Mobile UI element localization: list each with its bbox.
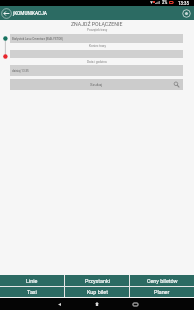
staticText: 2% bbox=[162, 0, 168, 6]
button[interactable]: Kup bilet bbox=[65, 287, 129, 297]
button[interactable]: dzisiaj 13:35 bbox=[10, 65, 183, 76]
staticText: Kup bilet bbox=[87, 289, 108, 295]
button[interactable]: Home bbox=[90, 298, 104, 310]
button[interactable]: Back bbox=[52, 298, 66, 310]
button[interactable]: My location bbox=[180, 7, 193, 20]
button[interactable]: Recent apps bbox=[128, 298, 142, 310]
staticText: jKOMUNIKACJA bbox=[13, 10, 47, 16]
other: Search bbox=[173, 81, 180, 88]
staticText: Przystanki bbox=[85, 278, 110, 284]
staticText: Początek trasy bbox=[87, 28, 108, 32]
button[interactable]: Linie bbox=[0, 275, 64, 286]
staticText: Szukaj bbox=[90, 82, 103, 87]
staticText: dzisiaj 13:35 bbox=[12, 69, 29, 73]
button[interactable]: Navigate up bbox=[0, 7, 13, 20]
button[interactable]: Ceny biletów bbox=[130, 275, 194, 286]
button[interactable]: Szukaj bbox=[10, 79, 183, 90]
button[interactable]: Planer bbox=[130, 287, 194, 297]
staticText: Białystok Lasu Cmentarz [BIAŁYSTOK] bbox=[12, 37, 63, 41]
staticText: Taxi bbox=[27, 289, 37, 295]
staticText: Data i godzina bbox=[87, 60, 107, 64]
staticText: ZNAJDŹ POŁĄCZENIE bbox=[71, 21, 123, 27]
staticText: Koniec trasy bbox=[89, 44, 106, 48]
staticText: Linie bbox=[26, 278, 38, 284]
button[interactable]: Przystanki bbox=[65, 275, 129, 286]
staticText: Planer bbox=[154, 289, 170, 295]
staticText: Ceny biletów bbox=[147, 278, 178, 284]
staticText: 13:35 bbox=[178, 0, 190, 6]
button[interactable]: Białystok Lasu Cmentarz [BIAŁYSTOK] bbox=[10, 34, 183, 43]
button[interactable]: Taxi bbox=[0, 287, 64, 297]
